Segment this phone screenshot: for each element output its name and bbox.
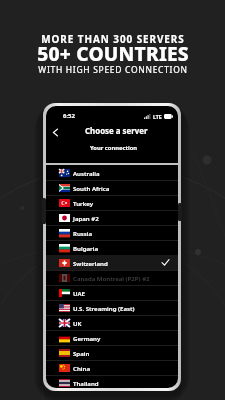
staticText: Spain bbox=[73, 349, 90, 357]
staticText: Germany bbox=[73, 334, 101, 342]
button[interactable]: Australia bbox=[46, 165, 178, 180]
button[interactable]: Back bbox=[49, 126, 62, 139]
staticText: China bbox=[73, 364, 90, 372]
button[interactable]: Germany bbox=[46, 330, 178, 345]
staticText: Turkey bbox=[73, 199, 94, 207]
staticText: Japan #2 bbox=[73, 214, 99, 222]
button[interactable]: Bulgaria bbox=[46, 240, 178, 255]
button[interactable]: South Africa bbox=[46, 180, 178, 195]
button[interactable]: Japan #2 bbox=[46, 210, 178, 225]
staticText: UAE bbox=[73, 289, 85, 297]
staticText: 6:52 bbox=[63, 112, 75, 120]
button[interactable]: UK bbox=[46, 315, 178, 330]
button[interactable]: Switzerland bbox=[46, 255, 178, 270]
staticText: Thailand bbox=[73, 379, 99, 387]
staticText: Choose a server bbox=[85, 126, 148, 137]
staticText: Canada Montreal (P2P) #2 bbox=[73, 274, 150, 282]
button[interactable]: UAE bbox=[46, 285, 178, 300]
button[interactable]: Spain bbox=[46, 345, 178, 360]
staticText: 50+ COUNTRIES bbox=[37, 40, 189, 66]
button[interactable]: Turkey bbox=[46, 195, 178, 210]
staticText: LTE bbox=[153, 113, 162, 120]
staticText: Russia bbox=[73, 229, 93, 237]
button[interactable]: U.S. Streaming (East) bbox=[46, 300, 178, 315]
button[interactable]: Thailand bbox=[46, 375, 178, 388]
staticText: Australia bbox=[73, 169, 100, 177]
button[interactable]: Russia bbox=[46, 225, 178, 240]
staticText: U.S. Streaming (East) bbox=[73, 304, 135, 312]
button[interactable]: Canada Montreal (P2P) #2 bbox=[46, 270, 178, 285]
staticText: UK bbox=[73, 319, 82, 327]
staticText: Bulgaria bbox=[73, 244, 98, 252]
staticText: Switzerland bbox=[73, 259, 108, 267]
button[interactable]: China bbox=[46, 360, 178, 375]
staticText: South Africa bbox=[73, 184, 110, 192]
staticText: Your connection bbox=[90, 144, 138, 152]
staticText: WITH HIGH SPEED CONNECTION bbox=[38, 64, 188, 76]
staticText: MORE THAN 300 SERVERS bbox=[41, 32, 185, 45]
